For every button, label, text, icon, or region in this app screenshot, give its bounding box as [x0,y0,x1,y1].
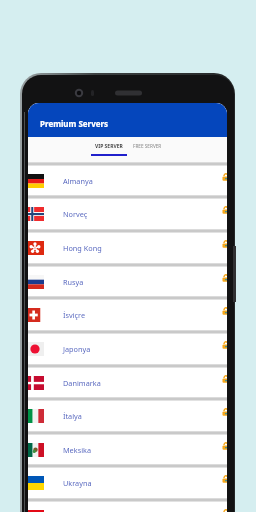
button[interactable]: Meksika [28,431,227,465]
staticText: Rusya [63,277,84,287]
staticText: Ukrayna [63,478,92,488]
button[interactable]: Premium Servers [28,103,227,137]
button[interactable]: Hong Kong [28,229,227,263]
button[interactable]: Norveç [28,195,227,229]
button[interactable]: Japonya [28,330,227,364]
button[interactable]: Locked premium server [222,240,227,248]
button[interactable]: İsviçre [28,296,227,330]
staticText: VIP SERVER [95,143,123,150]
button[interactable]: FREE SERVER [129,137,165,162]
button[interactable]: Locked premium server [222,475,227,483]
staticText: Danimarka [63,378,101,388]
button[interactable]: Rusya [28,263,227,297]
staticText: İtalya [63,411,82,421]
button[interactable]: Locked premium server [222,341,227,349]
button[interactable]: VIP SERVER [91,137,127,162]
button[interactable]: Locked premium server [222,307,227,315]
button[interactable]: Locked premium server [222,442,227,450]
button[interactable]: Locked premium server [222,206,227,214]
button[interactable]: Almanya [28,162,227,196]
staticText: İsviçre [63,310,86,320]
button[interactable]: Ukrayna [28,464,227,498]
button[interactable]: Locked premium server [222,509,227,512]
staticText: FREE SERVER [133,143,162,149]
button[interactable]: Locked premium server [222,173,227,181]
button[interactable]: Locked premium server [222,375,227,383]
staticText: Premium Servers [40,118,109,129]
staticText: Almanya [63,176,93,186]
staticText: Norveç [63,209,88,219]
button[interactable]: Danimarka [28,364,227,398]
button[interactable]: Türkiye [28,498,227,512]
button[interactable]: Locked premium server [222,408,227,416]
staticText: Hong Kong [63,243,102,253]
staticText: Meksika [63,445,91,455]
staticText: Japonya [63,344,91,354]
button[interactable]: Locked premium server [222,274,227,282]
button[interactable]: İtalya [28,397,227,431]
